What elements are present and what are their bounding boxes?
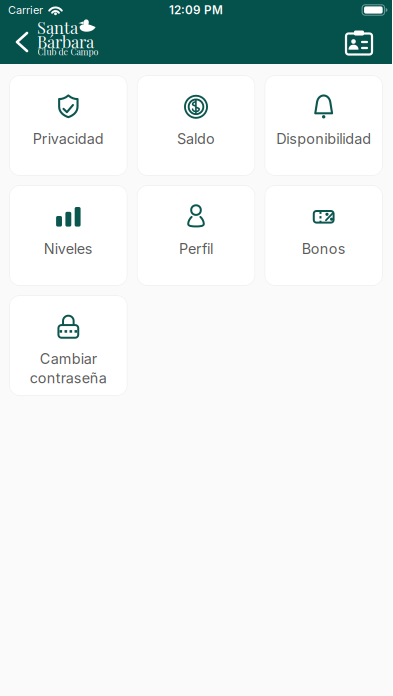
button[interactable]: Disponibilidad bbox=[264, 75, 383, 176]
staticText: Saldo bbox=[177, 130, 215, 147]
button[interactable]: Atrás bbox=[0, 21, 37, 63]
staticText: 12:09 PM bbox=[169, 3, 223, 17]
staticText: Privacidad bbox=[33, 130, 104, 147]
staticText: Bonos bbox=[302, 240, 346, 257]
staticText: Santa bbox=[37, 16, 78, 38]
button[interactable]: Niveles bbox=[9, 185, 128, 286]
staticText: contraseña bbox=[30, 369, 107, 387]
staticText: Disponibilidad bbox=[276, 130, 371, 147]
staticText: Niveles bbox=[44, 240, 93, 257]
button[interactable]: Carnet de socio bbox=[330, 20, 392, 64]
staticText: Perfil bbox=[179, 240, 213, 257]
staticText: Carrier bbox=[8, 3, 43, 17]
button[interactable]: Cambiar bbox=[9, 295, 128, 396]
staticText: Bárbara bbox=[37, 30, 94, 52]
staticText: Club de Campo bbox=[37, 45, 98, 57]
button[interactable]: Bonos bbox=[264, 185, 383, 286]
staticText: Cambiar bbox=[40, 350, 97, 367]
button[interactable]: Saldo bbox=[137, 75, 255, 176]
button[interactable]: Perfil bbox=[137, 185, 255, 286]
button[interactable]: Privacidad bbox=[9, 75, 128, 176]
